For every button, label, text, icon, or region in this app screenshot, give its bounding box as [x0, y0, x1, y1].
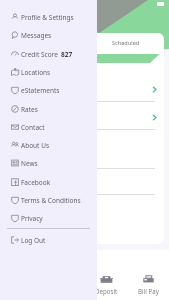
button[interactable]: Log Out [0, 231, 97, 249]
staticText: Rates [21, 105, 38, 114]
button[interactable]: Facebook [0, 173, 97, 191]
button[interactable]: Privacy [0, 209, 97, 227]
staticText: Scheduled [112, 39, 140, 47]
staticText: Log Out [21, 236, 46, 245]
button[interactable]: Rates [0, 100, 97, 118]
button[interactable]: Bill Pay [127, 274, 169, 300]
button[interactable]: Open details [151, 86, 158, 93]
staticText: Privacy [21, 214, 43, 223]
staticText: eStatements [21, 86, 60, 95]
button[interactable]: Profile & Settings [0, 8, 97, 26]
button[interactable]: Credit Score [0, 45, 97, 63]
button[interactable]: Open details [151, 114, 158, 121]
staticText: Messages [21, 31, 52, 40]
button[interactable]: Locations [0, 63, 97, 81]
button[interactable]: About Us [0, 136, 97, 154]
staticText: About Us [21, 141, 50, 150]
button[interactable]: eStatements [0, 81, 97, 99]
staticText: Profile & Settings [21, 13, 74, 22]
button[interactable]: Terms & Conditions [0, 191, 97, 209]
button[interactable]: Deposit [85, 274, 127, 300]
staticText: Contact [21, 123, 45, 132]
staticText: Locations [21, 68, 51, 77]
button[interactable]: Contact [0, 118, 97, 136]
button[interactable]: Scheduled [109, 37, 143, 49]
staticText: 827 [61, 50, 73, 59]
staticText: Facebook [21, 178, 51, 187]
staticText: Bill Pay [138, 287, 159, 295]
staticText: News [21, 159, 38, 168]
button[interactable]: News [0, 154, 97, 172]
staticText: Terms & Conditions [21, 196, 81, 205]
staticText: Deposit [95, 287, 118, 295]
staticText: Credit Score [21, 50, 58, 59]
button[interactable]: Messages [0, 26, 97, 44]
